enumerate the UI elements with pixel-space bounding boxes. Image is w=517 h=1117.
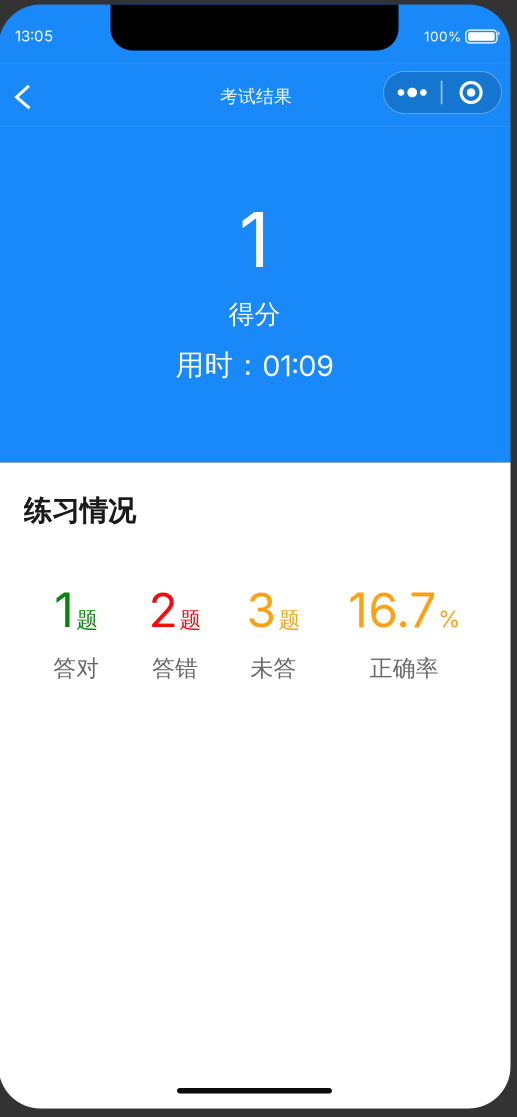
staticText: 正确率 [370,654,439,683]
staticText: 13:05 [15,27,53,45]
staticText: 100% [424,28,461,45]
staticText: % [438,605,460,633]
staticText: 1 [239,194,270,285]
staticText: 3 [246,581,276,639]
staticText: 用时：01:09 [175,347,333,383]
staticText: 题 [278,606,300,634]
staticText: 2 [148,581,177,639]
staticText: 得分 [228,298,280,331]
staticText: 16.7 [348,581,436,639]
staticText: 练习情况 [23,493,135,529]
staticText: 未答 [250,654,296,683]
staticText: 答错 [152,654,198,683]
button[interactable]: Back [0,63,46,125]
staticText: 考试结果 [220,85,292,108]
staticText: 题 [76,606,98,634]
staticText: 1 [54,581,74,639]
staticText: 题 [179,606,201,634]
button[interactable]: More options [383,71,501,113]
staticText: 答对 [53,654,99,683]
